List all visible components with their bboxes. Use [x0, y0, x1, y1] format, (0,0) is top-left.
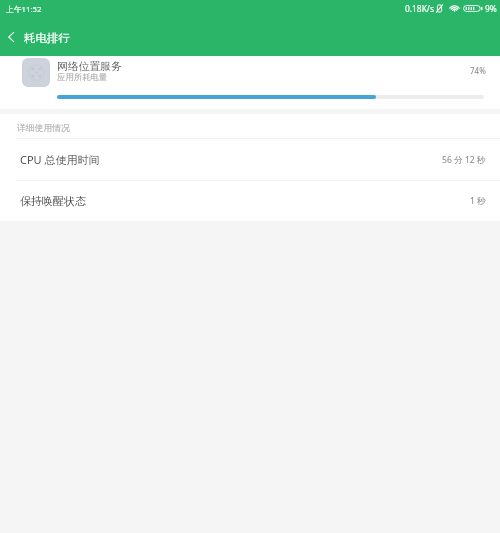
button[interactable]: 保持唤醒状态: [0, 181, 500, 221]
staticText: 1 秒: [470, 195, 486, 207]
staticText: 74%: [470, 65, 486, 76]
staticText: 网络位置服务: [57, 60, 122, 74]
staticText: 9%: [485, 3, 497, 14]
staticText: 详细使用情况: [17, 123, 70, 134]
staticText: CPU 总使用时间: [20, 152, 100, 167]
staticText: 应用所耗电量: [57, 72, 108, 83]
staticText: 0.18K/s: [405, 3, 434, 14]
button[interactable]: CPU 总使用时间: [0, 139, 500, 180]
staticText: 保持唤醒状态: [20, 194, 86, 208]
staticText: 上午11:52: [6, 4, 42, 15]
staticText: 耗电排行: [24, 31, 70, 45]
button[interactable]: 网络位置服务: [0, 56, 500, 109]
button[interactable]: Back: [0, 20, 21, 54]
staticText: 56 分 12 秒: [442, 154, 486, 166]
